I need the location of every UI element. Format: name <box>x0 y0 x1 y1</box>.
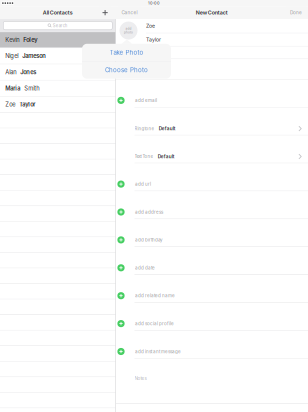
button[interactable]: add date <box>116 247 308 274</box>
button[interactable]: Nigel <box>0 48 115 64</box>
button[interactable]: Add contact <box>99 6 111 19</box>
staticText: add email <box>135 98 157 103</box>
button[interactable]: add related name <box>116 275 308 302</box>
button[interactable]: Take Photo <box>82 44 171 61</box>
staticText: Foley <box>23 36 37 43</box>
staticText: add url <box>135 181 151 187</box>
staticText: add social profile <box>135 321 174 326</box>
button[interactable]: add birthday <box>116 219 308 246</box>
staticText: Jameson <box>22 53 46 59</box>
button[interactable]: Zoe <box>0 97 115 112</box>
staticText: Default <box>158 154 175 159</box>
staticText: add address <box>135 209 163 215</box>
staticText: Nigel <box>5 53 18 59</box>
button[interactable]: add address <box>116 191 308 219</box>
staticText: Text Tone <box>134 154 152 159</box>
staticText: add related name <box>135 293 175 298</box>
staticText: Maria <box>5 85 20 92</box>
staticText: Zoe <box>5 101 15 108</box>
staticText <box>20 85 24 92</box>
staticText: add <box>125 27 131 30</box>
button[interactable]: Done <box>286 6 306 19</box>
staticText: Notes <box>134 376 146 381</box>
staticText: Default <box>159 126 176 131</box>
staticText: Kevin <box>5 36 19 43</box>
staticText: Taylor <box>146 37 161 43</box>
staticText <box>15 101 19 108</box>
staticText: 10:00 <box>148 1 160 5</box>
button[interactable]: add email <box>116 80 308 107</box>
staticText: add date <box>135 265 155 271</box>
staticText: Done <box>290 10 302 15</box>
staticText: Cancel <box>121 10 137 15</box>
staticText: add birthday <box>135 237 163 243</box>
button[interactable]: Zoe <box>116 19 308 33</box>
staticText: Smith <box>24 85 39 92</box>
button[interactable]: Choose Photo <box>82 61 171 79</box>
staticText: Choose Photo <box>105 66 148 74</box>
button[interactable]: Text Tone <box>116 135 308 163</box>
button[interactable]: add url <box>116 163 308 191</box>
staticText: All Contacts <box>43 9 73 16</box>
staticText <box>16 69 20 76</box>
button[interactable]: add social profile <box>116 303 308 330</box>
staticText <box>18 53 22 59</box>
staticText: Take Photo <box>109 49 143 56</box>
button[interactable]: Maria <box>0 81 115 96</box>
staticText: add instant message <box>135 349 181 354</box>
staticText: Search <box>53 23 68 28</box>
button[interactable]: Kevin <box>0 32 115 48</box>
button[interactable]: add instant message <box>116 331 308 358</box>
button[interactable]: Cancel <box>118 6 140 19</box>
staticText: Zoe <box>146 23 155 29</box>
staticText: New Contact <box>196 9 228 16</box>
button[interactable]: Search <box>3 21 112 30</box>
staticText: Ringtone <box>134 126 153 131</box>
staticText: photo <box>124 31 133 34</box>
staticText: Taylor <box>19 101 35 108</box>
staticText: Alan <box>5 69 16 76</box>
staticText: Jones <box>20 69 36 76</box>
button[interactable]: Taylor <box>116 33 308 46</box>
staticText <box>19 36 23 43</box>
button[interactable]: Ringtone <box>116 108 308 135</box>
button[interactable]: Add photo <box>119 22 137 40</box>
button[interactable]: Alan <box>0 64 115 80</box>
